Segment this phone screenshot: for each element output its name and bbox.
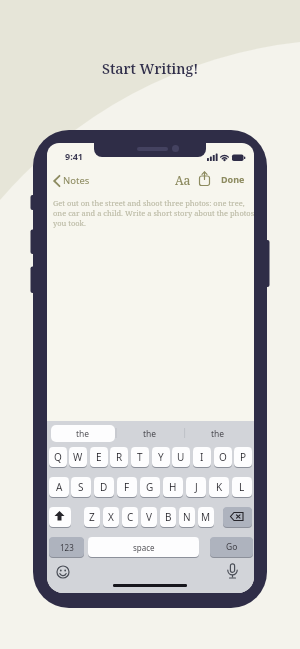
button[interactable]: Done [221,173,245,185]
button[interactable] [198,171,212,187]
button[interactable]: the [116,425,184,442]
button[interactable]: Notes [51,172,99,190]
staticText: B [165,510,172,524]
staticText: Go [226,541,238,553]
button[interactable]: U [172,447,190,467]
staticText: the [211,428,225,440]
staticText: I [200,450,204,464]
button[interactable]: M [198,507,214,527]
staticText: G [146,480,154,494]
staticText: A [56,480,63,494]
button[interactable] [49,507,71,527]
staticText: H [169,480,177,494]
button[interactable]: V [141,507,157,527]
button[interactable]: F [117,477,137,497]
staticText: 9:41 [65,150,83,162]
button[interactable]: O [214,447,232,467]
staticText: E [96,450,102,464]
staticText: S [78,480,84,494]
staticText: T [137,450,143,464]
staticText: Start Writing! [102,59,199,78]
staticText: K [216,480,223,494]
staticText: the [76,428,90,440]
button[interactable]: A [49,477,69,497]
button[interactable]: I [193,447,211,467]
staticText: P [240,450,247,464]
button[interactable]: the [51,425,115,442]
staticText: Y [158,450,164,464]
staticText: X [108,510,114,524]
button[interactable]: Aa [175,172,191,188]
staticText: D [100,480,108,494]
button[interactable]: Q [49,447,67,467]
button[interactable]: S [71,477,91,497]
staticText: U [177,450,185,464]
button[interactable]: E [90,447,108,467]
button[interactable]: G [140,477,160,497]
button[interactable]: C [122,507,138,527]
staticText: W [73,450,83,464]
button[interactable]: Go [210,537,253,557]
button[interactable]: T [131,447,149,467]
staticText: C [127,510,134,524]
button[interactable]: Y [152,447,170,467]
staticText: J [195,480,198,494]
staticText: Notes [63,174,90,187]
staticText: F [124,480,130,494]
staticText: Z [89,510,95,524]
staticText: 123 [60,542,74,553]
button[interactable]: N [179,507,195,527]
button[interactable]: space [88,537,199,557]
button[interactable]: W [69,447,87,467]
staticText: R [116,450,123,464]
staticText: M [201,510,211,524]
staticText: Get out on the street and shoot three ph… [53,198,254,228]
button[interactable]: J [186,477,206,497]
button[interactable]: P [234,447,252,467]
button[interactable] [223,507,252,527]
staticText: the [143,428,157,440]
staticText: L [239,480,245,494]
button[interactable]: Z [84,507,100,527]
button[interactable]: L [232,477,252,497]
button[interactable]: 123 [49,537,84,557]
staticText: V [146,510,152,524]
button[interactable]: B [160,507,176,527]
button[interactable]: D [94,477,114,497]
button[interactable]: K [209,477,229,497]
button[interactable]: X [103,507,119,527]
staticText: space [133,542,155,553]
button[interactable]: R [110,447,128,467]
staticText: O [219,450,227,464]
button[interactable]: H [163,477,183,497]
staticText: Q [54,450,62,464]
button[interactable]: the [185,425,251,442]
staticText: N [183,510,191,524]
